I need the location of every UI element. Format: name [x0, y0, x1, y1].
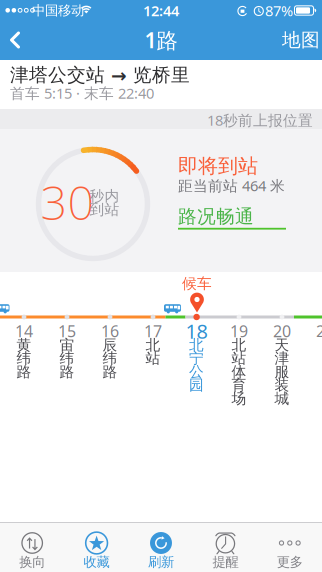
button[interactable]: 地图 — [278, 20, 322, 60]
staticText: 15 — [58, 320, 76, 342]
staticText: 纬 — [102, 349, 117, 367]
staticText: 16 — [101, 320, 119, 342]
staticText: 距当前站 464 米 — [178, 176, 285, 195]
staticText: 候车 — [182, 274, 212, 292]
staticText: 30 — [40, 171, 94, 233]
staticText: 场 — [231, 390, 246, 408]
staticText: 服 — [274, 363, 289, 381]
staticText: 首车 5:15 · 末车 22:40 — [10, 83, 154, 103]
staticText: 路况畅通 — [178, 205, 254, 228]
staticText: 19 — [230, 320, 248, 342]
staticText: 北 — [145, 336, 160, 354]
staticText: 14 — [15, 320, 33, 342]
staticText: 装 — [274, 376, 289, 394]
staticText: 辰 — [102, 336, 117, 354]
staticText: 到站 — [89, 200, 119, 218]
staticText: 路 — [16, 363, 31, 381]
staticText: 18秒前上报位置 — [207, 110, 313, 130]
staticText: 路 — [59, 363, 74, 381]
staticText: 21 — [316, 320, 322, 342]
button[interactable]: Back — [0, 20, 32, 60]
button[interactable]: 更多 — [258, 522, 322, 572]
staticText: 育 — [231, 376, 246, 394]
staticText: 津 — [274, 349, 289, 367]
staticText: 1路 — [144, 26, 177, 54]
staticText: 刷新 — [148, 554, 174, 570]
staticText: 20 — [273, 320, 291, 342]
staticText: 宁 — [189, 349, 204, 367]
staticText: 津塔公交站 → 览桥里 — [10, 63, 190, 86]
staticText: 即将到站 — [178, 154, 258, 178]
staticText: 公 — [189, 363, 204, 381]
staticText: 北 — [189, 336, 204, 354]
staticText: 12:44 — [143, 1, 179, 20]
staticText: 站 — [145, 349, 160, 367]
staticText: 天 — [274, 336, 289, 354]
staticText: 纬 — [16, 349, 31, 367]
staticText: 提醒 — [212, 554, 238, 570]
button[interactable]: 刷新 — [129, 522, 193, 572]
staticText: 更多 — [277, 554, 303, 570]
staticText: 黄 — [16, 336, 31, 354]
staticText: 17 — [144, 320, 162, 342]
staticText: 园 — [189, 376, 204, 394]
button[interactable]: 换向 — [0, 522, 64, 572]
staticText: 站 — [231, 349, 246, 367]
staticText: 北 — [231, 336, 246, 354]
staticText: 体 — [231, 363, 246, 381]
button[interactable]: 提醒 — [193, 522, 258, 572]
staticText: 收藏 — [84, 554, 110, 570]
staticText: 秒内 — [89, 187, 119, 205]
staticText: 城 — [274, 390, 289, 408]
staticText: 纬 — [59, 349, 74, 367]
staticText: 18 — [186, 318, 208, 344]
staticText: 中国移动 — [32, 2, 84, 19]
staticText: 87% — [265, 1, 293, 20]
button[interactable]: 收藏 — [64, 522, 129, 572]
staticText: 换向 — [19, 554, 45, 570]
staticText: 路 — [102, 363, 117, 381]
staticText: 宙 — [59, 336, 74, 354]
staticText: 地图 — [282, 28, 320, 51]
